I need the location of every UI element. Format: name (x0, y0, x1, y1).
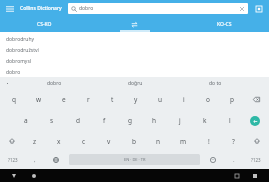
staticText: do to (209, 80, 222, 87)
staticText: a (24, 116, 28, 125)
staticText: e (62, 95, 66, 104)
staticText: j (179, 116, 181, 125)
button[interactable]: ! (196, 131, 221, 151)
staticText: CS-KO (37, 21, 52, 28)
button[interactable]: ?123 (1, 151, 25, 168)
staticText: d (76, 116, 80, 125)
staticText: g (128, 116, 132, 125)
staticText: dobromysl (6, 58, 32, 65)
button[interactable]: k (192, 110, 217, 131)
button[interactable]: f (91, 110, 117, 131)
staticText: ? (232, 137, 235, 146)
staticText: n (156, 137, 161, 146)
staticText: w (36, 95, 42, 104)
staticText: v (107, 137, 111, 146)
button[interactable]: Open navigation menu (0, 0, 20, 17)
staticText: f (103, 116, 106, 125)
button[interactable]: dobrodružství (0, 45, 269, 56)
button[interactable]: o (196, 89, 220, 110)
button[interactable]: doğru (95, 77, 175, 89)
staticText: dobrodruhy (6, 36, 35, 43)
staticText: l (229, 116, 231, 125)
button[interactable]: b (121, 131, 146, 151)
button[interactable]: dobromysl (0, 56, 269, 67)
button[interactable]: CS-KO (0, 17, 89, 32)
staticText: m (180, 137, 187, 146)
button[interactable]: Overview (249, 170, 261, 182)
staticText: ! (208, 137, 210, 146)
button[interactable]: dobro (68, 3, 248, 14)
button[interactable]: q (1, 89, 26, 110)
staticText: KO-CS (217, 21, 232, 28)
button[interactable]: u (148, 89, 172, 110)
staticText: . (233, 156, 235, 164)
staticText: , (34, 156, 36, 164)
button[interactable]: w (26, 89, 51, 110)
button[interactable]: Emoji (202, 151, 224, 168)
button[interactable]: dobrodruhy (0, 34, 269, 45)
button[interactable]: z (23, 131, 47, 151)
button[interactable]: c (71, 131, 96, 151)
staticText: EN · DE · TR (124, 157, 146, 162)
button[interactable]: d (65, 110, 91, 131)
staticText: k (203, 116, 207, 125)
staticText: u (158, 95, 163, 104)
staticText: o (206, 95, 210, 104)
staticText: r (87, 95, 90, 104)
button[interactable]: g (117, 110, 142, 131)
button[interactable]: j (167, 110, 192, 131)
button[interactable]: l (217, 110, 242, 131)
staticText: z (33, 137, 37, 146)
button[interactable]: y (124, 89, 148, 110)
button[interactable]: Backspace (244, 89, 268, 110)
button[interactable]: Swap languages (89, 17, 179, 32)
staticText: y (134, 95, 138, 104)
button[interactable]: Home (28, 170, 40, 182)
staticText: doğru (128, 80, 143, 87)
button[interactable]: a (13, 110, 39, 131)
button[interactable]: Enter (242, 110, 268, 131)
button[interactable]: Clear query (238, 5, 245, 12)
button[interactable]: Shift (246, 131, 268, 151)
button[interactable]: v (96, 131, 121, 151)
button[interactable]: KO-CS (179, 17, 269, 32)
button[interactable]: m (171, 131, 196, 151)
button[interactable]: EN · DE · TR (69, 154, 200, 165)
button[interactable]: Shift (1, 131, 23, 151)
button[interactable]: Back (8, 170, 20, 182)
staticText: x (57, 137, 61, 146)
staticText: b (132, 137, 136, 146)
button[interactable]: Change language (45, 151, 67, 168)
button[interactable]: p (220, 89, 244, 110)
button[interactable]: s (39, 110, 65, 131)
staticText: t (111, 95, 114, 104)
button[interactable]: Saved words (252, 0, 266, 17)
button[interactable]: x (47, 131, 71, 151)
staticText: s (50, 116, 54, 125)
button[interactable]: i (172, 89, 196, 110)
staticText: ?123 (251, 157, 261, 163)
staticText: Collins Dictionary (20, 5, 62, 12)
button[interactable]: t (100, 89, 124, 110)
staticText: dobro (6, 69, 21, 76)
staticText: p (230, 95, 234, 104)
button[interactable]: ?123 (244, 151, 268, 168)
staticText: dobro (47, 80, 62, 87)
button[interactable]: ? (221, 131, 246, 151)
button[interactable]: r (76, 89, 100, 110)
button[interactable]: Recent apps (231, 170, 243, 182)
button[interactable]: do to (175, 77, 255, 89)
button[interactable]: dobro (0, 67, 269, 77)
button[interactable]: Comma (25, 151, 45, 168)
staticText: q (12, 95, 16, 104)
button[interactable]: h (142, 110, 167, 131)
staticText: c (82, 137, 86, 146)
staticText: dobrodružství (6, 47, 39, 54)
button[interactable]: n (146, 131, 171, 151)
button[interactable]: e (51, 89, 76, 110)
button[interactable]: dobro (14, 77, 95, 89)
staticText: h (152, 116, 157, 125)
staticText: dobro (79, 5, 94, 12)
button[interactable]: More suggestions (0, 77, 14, 89)
